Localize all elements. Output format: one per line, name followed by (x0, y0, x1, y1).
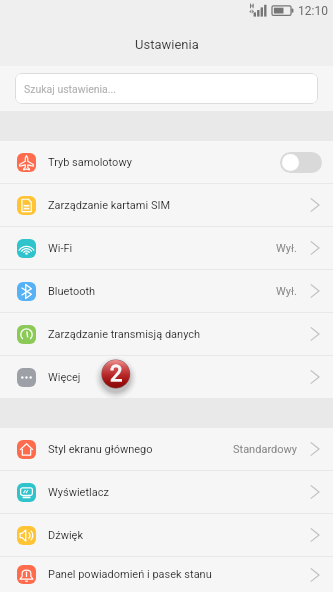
button[interactable]: Wyświetlacz (0, 471, 333, 513)
staticText: Zarządzanie transmisją danych (48, 328, 201, 341)
button[interactable]: Zarządzanie kartami SIM (0, 184, 333, 226)
staticText: Dźwięk (48, 529, 84, 542)
staticText: Więcej (48, 371, 81, 384)
button[interactable]: Zarządzanie transmisją danych (0, 313, 333, 355)
button[interactable]: Bluetooth (0, 270, 333, 312)
staticText: Wył. (276, 242, 297, 255)
button[interactable]: Wi-Fi (0, 227, 333, 269)
staticText: 2 (110, 361, 123, 387)
staticText: Panel powiadomień i pasek stanu (48, 568, 212, 581)
staticText: Bluetooth (48, 285, 96, 298)
staticText: Standardowy (233, 443, 297, 456)
staticText: Wyświetlacz (48, 486, 109, 499)
staticText: Szukaj ustawienia... (24, 83, 117, 95)
button[interactable]: Tryb samolotowy (0, 141, 333, 183)
button[interactable]: Toggle airplane mode (280, 152, 322, 173)
staticText: 12:10 (298, 4, 328, 18)
button[interactable]: Dźwięk (0, 514, 333, 556)
staticText: Wył. (276, 285, 297, 298)
staticText: Tryb samolotowy (48, 156, 132, 169)
staticText: Zarządzanie kartami SIM (48, 199, 171, 212)
staticText: Wi-Fi (48, 242, 73, 255)
button[interactable]: Panel powiadomień i pasek stanu (0, 557, 333, 592)
button[interactable]: Szukaj ustawienia... (15, 73, 318, 104)
staticText: Ustawienia (135, 37, 199, 52)
staticText: Styl ekranu głównego (48, 443, 153, 456)
button[interactable]: Styl ekranu głównego (0, 428, 333, 470)
button[interactable]: Więcej (0, 356, 333, 398)
